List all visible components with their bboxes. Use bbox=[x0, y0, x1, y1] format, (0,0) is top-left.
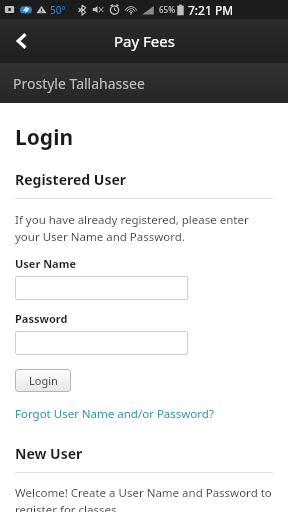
staticText: User Name bbox=[15, 256, 77, 271]
staticText: Registered User bbox=[15, 170, 127, 189]
button[interactable]: Back bbox=[0, 19, 44, 63]
staticText: Pay Fees bbox=[114, 31, 175, 51]
button[interactable] bbox=[15, 276, 188, 300]
staticText: 50° bbox=[50, 3, 66, 17]
staticText: 7:21 PM bbox=[188, 2, 234, 18]
staticText: New User bbox=[15, 444, 83, 463]
staticText: Login bbox=[29, 373, 58, 388]
staticText: If you have already registered, please e… bbox=[15, 212, 273, 244]
button[interactable] bbox=[15, 331, 188, 355]
staticText: Prostyle Tallahassee bbox=[13, 74, 145, 93]
button[interactable]: Forgot User Name and/or Password? bbox=[15, 406, 214, 422]
staticText: Welcome! Create a User Name and Password… bbox=[15, 485, 273, 512]
button[interactable]: Login bbox=[15, 369, 71, 392]
staticText: Password bbox=[15, 311, 68, 326]
staticText: 65% bbox=[159, 4, 175, 15]
staticText: Login bbox=[15, 123, 74, 152]
